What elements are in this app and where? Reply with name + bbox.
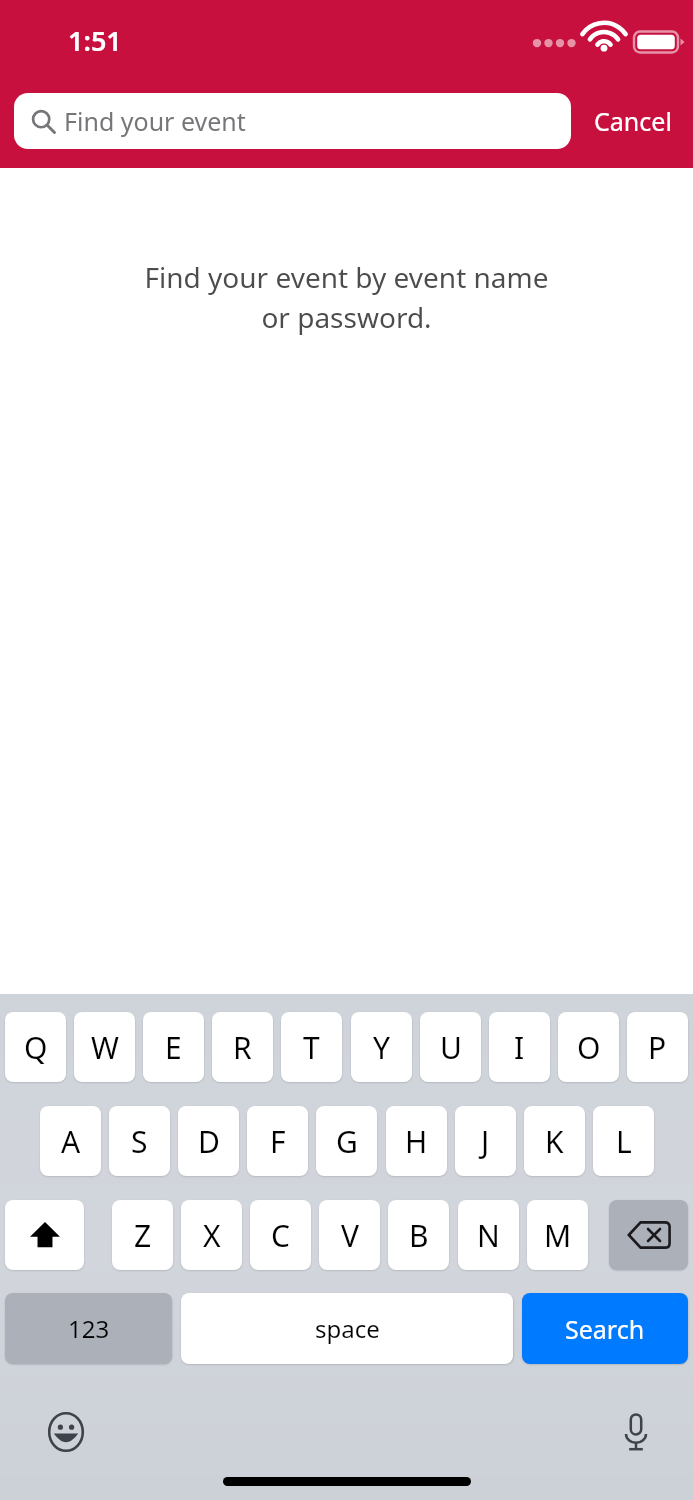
button[interactable]: A — [40, 1106, 101, 1176]
button[interactable]: Shift — [5, 1200, 84, 1270]
staticText: C — [271, 1215, 290, 1256]
staticText: V — [341, 1215, 359, 1256]
button[interactable]: Z — [112, 1200, 173, 1270]
staticText: Find your event by event name or passwor… — [40, 258, 653, 337]
staticText: Z — [134, 1215, 152, 1256]
staticText: Y — [373, 1027, 390, 1068]
button[interactable]: Search — [522, 1293, 688, 1364]
staticText: M — [544, 1215, 572, 1256]
button[interactable]: D — [178, 1106, 239, 1176]
staticText: 123 — [68, 1312, 110, 1345]
button[interactable]: H — [386, 1106, 447, 1176]
staticText: Q — [24, 1027, 48, 1068]
button[interactable]: 123 — [5, 1293, 172, 1364]
button[interactable]: P — [627, 1012, 688, 1082]
staticText: N — [477, 1215, 500, 1256]
button[interactable]: V — [319, 1200, 380, 1270]
staticText: E — [165, 1027, 182, 1068]
button[interactable]: I — [489, 1012, 550, 1082]
staticText: X — [203, 1215, 221, 1256]
button[interactable]: B — [388, 1200, 449, 1270]
staticText: J — [481, 1121, 490, 1162]
button[interactable]: L — [593, 1106, 654, 1176]
button[interactable]: space — [181, 1293, 513, 1364]
button[interactable]: F — [247, 1106, 308, 1176]
staticText: space — [315, 1312, 380, 1345]
button[interactable]: U — [420, 1012, 481, 1082]
button[interactable]: J — [455, 1106, 516, 1176]
staticText: K — [545, 1121, 564, 1162]
staticText: B — [409, 1215, 429, 1256]
button[interactable]: Cancel — [578, 93, 688, 149]
button[interactable]: K — [524, 1106, 585, 1176]
staticText: T — [303, 1027, 320, 1068]
staticText: G — [336, 1121, 358, 1162]
staticText: A — [61, 1121, 81, 1162]
button[interactable]: X — [181, 1200, 242, 1270]
button[interactable]: W — [74, 1012, 135, 1082]
staticText: Find your event — [64, 104, 246, 138]
button[interactable]: S — [109, 1106, 170, 1176]
staticText: L — [616, 1121, 632, 1162]
button[interactable]: E — [143, 1012, 204, 1082]
staticText: Search — [565, 1312, 645, 1346]
button[interactable]: Y — [351, 1012, 412, 1082]
staticText: S — [131, 1121, 148, 1162]
button[interactable]: R — [212, 1012, 273, 1082]
staticText: O — [577, 1027, 601, 1068]
button[interactable]: Emoji keyboard — [38, 1404, 94, 1460]
button[interactable]: T — [281, 1012, 342, 1082]
staticText: D — [198, 1121, 220, 1162]
staticText: H — [405, 1121, 428, 1162]
button[interactable]: C — [250, 1200, 311, 1270]
button[interactable]: G — [316, 1106, 377, 1176]
button[interactable]: Find your event — [14, 93, 571, 149]
staticText: R — [233, 1027, 252, 1068]
staticText: Cancel — [594, 104, 672, 138]
button[interactable]: Backspace — [609, 1200, 688, 1270]
staticText: U — [440, 1027, 462, 1068]
staticText: F — [270, 1121, 286, 1162]
button[interactable]: N — [458, 1200, 519, 1270]
staticText: 1:51 — [68, 22, 122, 59]
staticText: W — [91, 1027, 119, 1068]
button[interactable]: M — [527, 1200, 588, 1270]
button[interactable]: Voice input — [608, 1404, 664, 1460]
staticText: I — [514, 1027, 525, 1068]
staticText: P — [648, 1027, 667, 1068]
button[interactable]: O — [558, 1012, 619, 1082]
button[interactable]: Q — [5, 1012, 66, 1082]
